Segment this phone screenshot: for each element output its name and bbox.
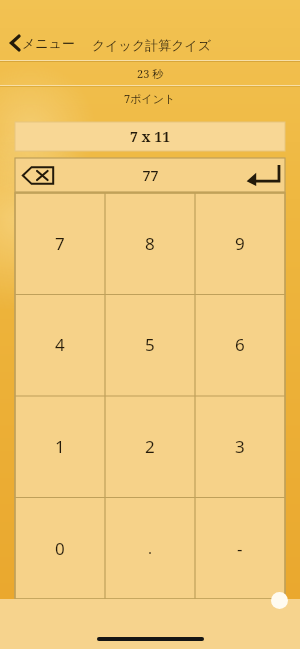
- staticText: 5: [145, 333, 155, 356]
- button[interactable]: 9: [195, 193, 285, 294]
- staticText: 2: [145, 435, 155, 458]
- button[interactable]: 7 x 11: [15, 122, 285, 151]
- button[interactable]: -: [195, 497, 285, 599]
- button[interactable]: .: [105, 497, 195, 599]
- staticText: 77: [142, 166, 159, 185]
- button[interactable]: 8: [105, 193, 195, 294]
- staticText: メニュー: [22, 35, 75, 51]
- staticText: 1: [55, 435, 65, 458]
- button[interactable]: 0: [15, 497, 105, 599]
- staticText: 23 秒: [137, 66, 164, 81]
- staticText: 7ポイント: [124, 91, 176, 106]
- staticText: 9: [235, 232, 245, 255]
- button[interactable]: Back: [8, 33, 77, 53]
- other: Back: [10, 35, 21, 51]
- button[interactable]: 6: [195, 294, 285, 395]
- staticText: -: [237, 537, 243, 560]
- staticText: 7: [55, 232, 65, 255]
- staticText: 8: [145, 232, 155, 255]
- staticText: 4: [55, 333, 65, 356]
- button[interactable]: 1: [15, 395, 105, 497]
- button[interactable]: Backspace: [15, 158, 75, 192]
- button[interactable]: 7: [15, 193, 105, 294]
- staticText: .: [148, 538, 153, 558]
- button[interactable]: 2: [105, 395, 195, 497]
- staticText: 6: [235, 333, 245, 356]
- staticText: 3: [235, 435, 245, 458]
- staticText: 0: [55, 537, 65, 560]
- staticText: クイック計算クイズ: [92, 37, 212, 53]
- staticText: 7 x 11: [130, 127, 171, 146]
- button[interactable]: 4: [15, 294, 105, 395]
- button[interactable]: 5: [105, 294, 195, 395]
- button[interactable]: 3: [195, 395, 285, 497]
- button[interactable]: Enter: [225, 158, 285, 192]
